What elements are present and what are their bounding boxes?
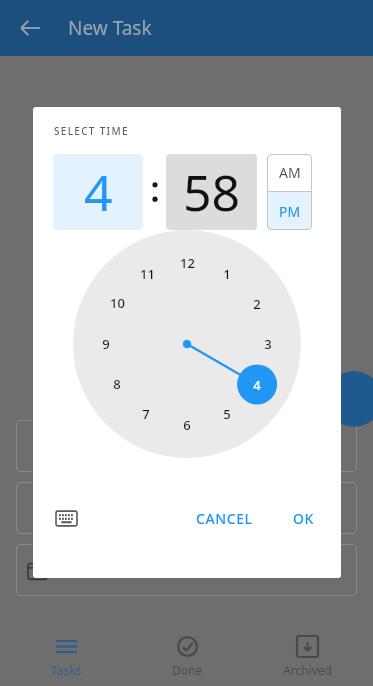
staticText: 9 xyxy=(102,335,110,353)
button[interactable]: Add task xyxy=(326,371,373,427)
button[interactable]: CANCEL xyxy=(186,501,263,536)
staticText: New Task xyxy=(68,15,152,41)
staticText: Tasks xyxy=(51,662,82,678)
staticText: Done xyxy=(172,662,203,678)
button[interactable]: 58 xyxy=(166,154,257,230)
staticText: CANCEL xyxy=(196,509,253,528)
staticText: 4 xyxy=(84,158,113,226)
staticText: 5 xyxy=(223,405,231,423)
staticText: 11 xyxy=(140,265,155,283)
button[interactable]: Done xyxy=(132,628,242,686)
button[interactable]: Switch to text input xyxy=(49,501,83,535)
button[interactable] xyxy=(16,420,357,472)
button[interactable]: Task Date xyxy=(16,544,357,596)
button[interactable]: 4 xyxy=(53,154,143,230)
button[interactable]: Tasks xyxy=(11,628,121,686)
staticText: Archived xyxy=(283,662,332,678)
staticText: 7 xyxy=(142,405,150,423)
staticText: 10 xyxy=(110,294,125,312)
staticText: PM xyxy=(279,202,301,221)
staticText: OK xyxy=(293,509,315,528)
button[interactable]: PM xyxy=(267,192,312,230)
button[interactable]: Back xyxy=(8,6,52,50)
button[interactable]: AM xyxy=(267,154,312,191)
staticText: 3 xyxy=(264,335,272,353)
staticText: 8 xyxy=(113,375,121,393)
staticText: 1 xyxy=(223,265,231,283)
button[interactable]: Archived xyxy=(252,628,362,686)
staticText: SELECT TIME xyxy=(54,124,129,138)
staticText: 4 xyxy=(253,376,261,394)
button[interactable]: OK xyxy=(283,501,325,536)
staticText: 58 xyxy=(183,158,241,226)
staticText: 2 xyxy=(253,295,261,313)
button[interactable] xyxy=(16,482,357,534)
staticText: AM xyxy=(279,163,301,182)
staticText: Task Date xyxy=(59,560,127,580)
staticText: 12 xyxy=(180,254,195,272)
staticText: 6 xyxy=(183,416,191,434)
